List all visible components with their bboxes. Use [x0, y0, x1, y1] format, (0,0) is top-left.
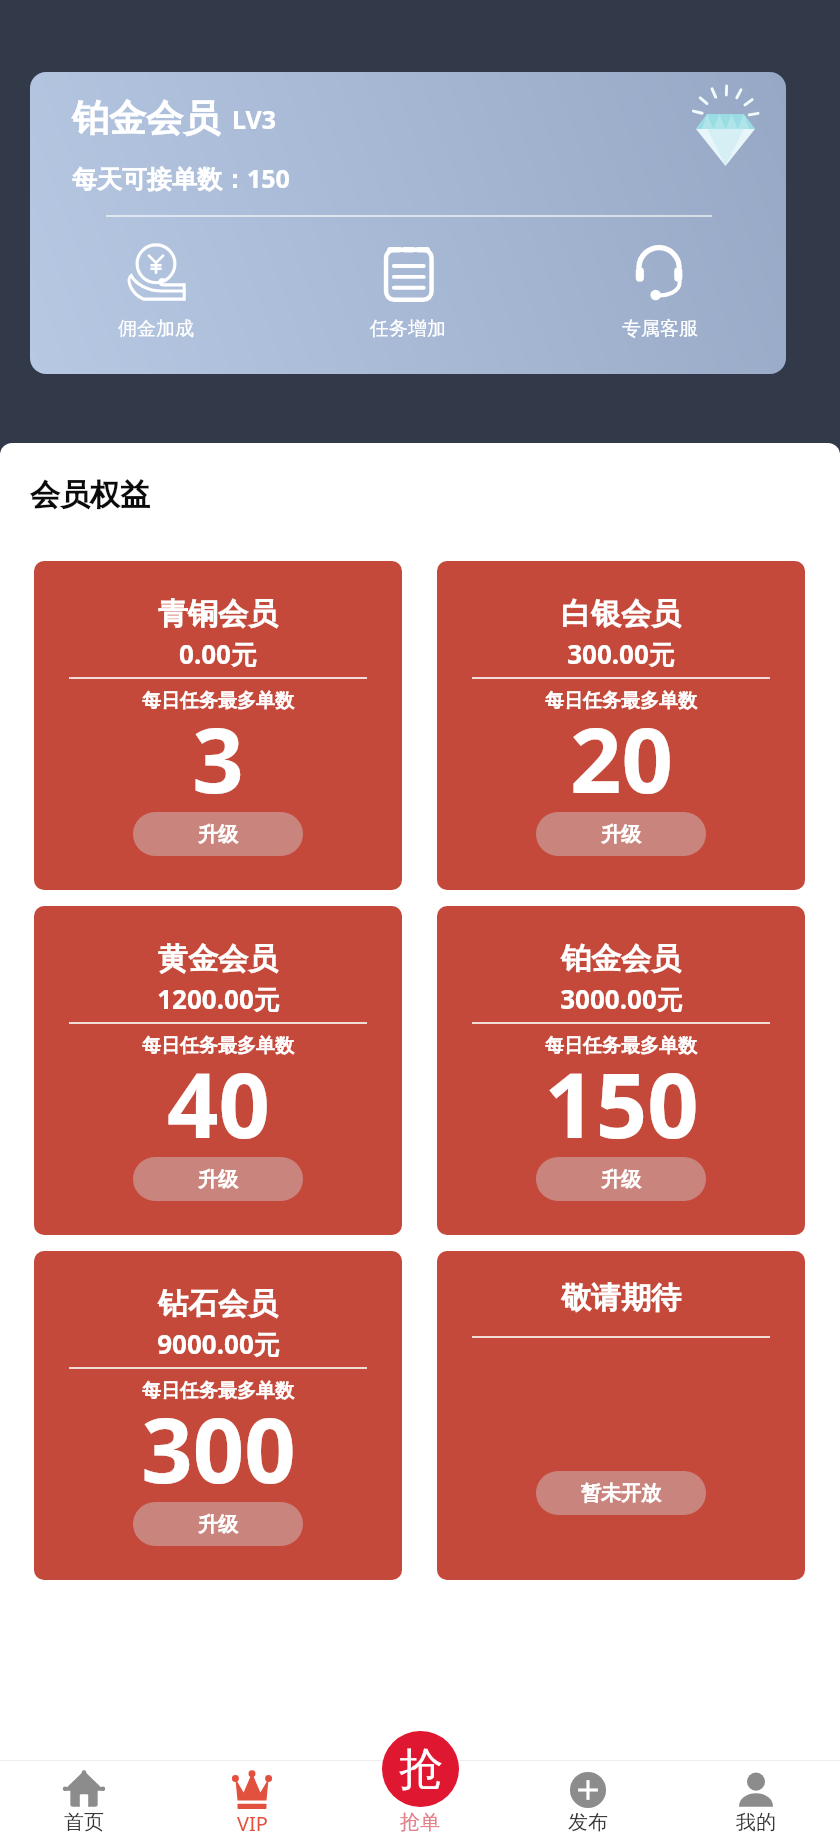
button[interactable]: 佣金加成	[96, 242, 216, 352]
staticText: 首页	[64, 1810, 104, 1835]
staticText: 任务增加	[370, 317, 446, 341]
staticText: 每日任务最多单数	[545, 689, 697, 713]
staticText: 发布	[568, 1810, 608, 1835]
staticText: 敬请期待	[561, 1279, 681, 1317]
button[interactable]: 升级	[536, 812, 706, 856]
button[interactable]: 升级	[133, 1157, 303, 1201]
staticText: 每日任务最多单数	[142, 689, 294, 713]
staticText: 0.00元	[179, 636, 257, 672]
staticText: 青铜会员	[158, 595, 278, 633]
staticText: 我的	[736, 1810, 776, 1835]
staticText: 300	[141, 1387, 296, 1510]
staticText: VIP	[237, 1810, 268, 1836]
button[interactable]: 白银会员	[437, 561, 805, 890]
button[interactable]: 暂未开放	[536, 1471, 706, 1515]
staticText: 每天可接单数：150	[72, 161, 290, 195]
staticText: 20	[570, 697, 673, 820]
staticText: 升级	[198, 822, 238, 847]
button[interactable]: 黄金会员	[34, 906, 402, 1235]
staticText: 每日任务最多单数	[545, 1034, 697, 1058]
staticText: 专属客服	[622, 317, 698, 341]
staticText: 300.00元	[567, 636, 675, 672]
button[interactable]: 升级	[133, 812, 303, 856]
button[interactable]: VIP	[168, 1760, 336, 1836]
staticText: 9000.00元	[157, 1326, 280, 1362]
button[interactable]: 任务增加	[348, 242, 468, 352]
staticText: 铂金会员	[561, 940, 681, 978]
staticText: 铂金会员	[72, 95, 220, 142]
staticText: 暂未开放	[581, 1481, 661, 1506]
staticText: 3	[192, 697, 244, 820]
staticText: 佣金加成	[118, 317, 194, 341]
staticText: 3000.00元	[560, 981, 683, 1017]
staticText: 每日任务最多单数	[142, 1379, 294, 1403]
staticText: 钻石会员	[158, 1285, 278, 1323]
staticText: 1200.00元	[157, 981, 280, 1017]
button[interactable]: 抢单	[382, 1731, 459, 1807]
button[interactable]: 青铜会员	[34, 561, 402, 890]
staticText: 升级	[198, 1167, 238, 1192]
staticText: 40	[167, 1042, 270, 1165]
button[interactable]: 升级	[133, 1502, 303, 1546]
button[interactable]: 我的	[672, 1760, 840, 1836]
staticText: 每日任务最多单数	[142, 1034, 294, 1058]
staticText: 150	[544, 1042, 699, 1165]
staticText: 白银会员	[561, 595, 681, 633]
button[interactable]: 升级	[536, 1157, 706, 1201]
button[interactable]: 发布	[504, 1760, 672, 1836]
staticText: 抢单	[400, 1810, 440, 1835]
button[interactable]: 铂金会员	[437, 906, 805, 1235]
staticText: 会员权益	[30, 476, 150, 514]
staticText: 升级	[601, 822, 641, 847]
staticText: 抢	[399, 1742, 443, 1797]
button[interactable]: 首页	[0, 1760, 168, 1836]
staticText: 黄金会员	[158, 940, 278, 978]
button[interactable]: 敬请期待	[437, 1251, 805, 1580]
staticText: 升级	[601, 1167, 641, 1192]
button[interactable]: 钻石会员	[34, 1251, 402, 1580]
button[interactable]: 专属客服	[600, 242, 720, 352]
staticText: LV3	[232, 102, 277, 136]
staticText: 升级	[198, 1512, 238, 1537]
